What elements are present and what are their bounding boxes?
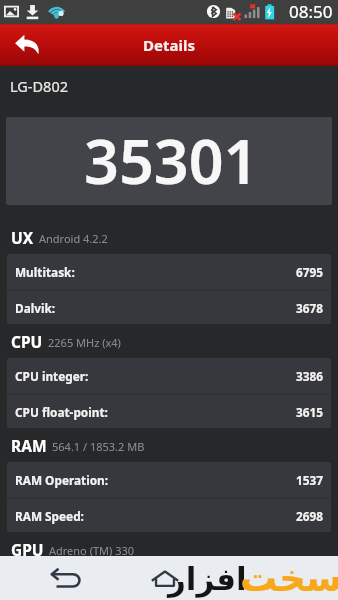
button[interactable]: Back <box>44 556 88 600</box>
staticText: Adreno (TM) 330 <box>49 543 135 558</box>
staticText: 08:50 <box>289 0 333 23</box>
staticText: Multitask: <box>15 264 75 280</box>
staticText: افزار <box>168 561 247 597</box>
staticText: 1274 <box>296 575 323 591</box>
staticText: 2D graphics: <box>15 575 87 591</box>
staticText: 3678 <box>296 300 323 316</box>
button[interactable]: RAM Speed: <box>7 499 331 532</box>
staticText: Dalvik: <box>15 300 56 316</box>
button[interactable]: 2D graphics: <box>7 566 331 600</box>
button[interactable]: CPU integer: <box>7 358 331 394</box>
staticText: 35301 <box>84 119 259 202</box>
staticText: RAM Operation: <box>15 472 109 488</box>
staticText: UX <box>11 227 34 248</box>
staticText: سخت <box>240 557 338 600</box>
staticText: 3615 <box>296 404 323 420</box>
button[interactable]: CPU float-point: <box>7 395 331 428</box>
staticText: CPU <box>11 331 43 352</box>
staticText: Android 4.2.2 <box>39 231 108 246</box>
staticText: 2265 MHz (x4) <box>48 335 121 350</box>
button[interactable]: RAM Operation: <box>7 462 331 498</box>
button[interactable]: Back <box>0 24 54 66</box>
button[interactable]: Multitask: <box>7 254 331 290</box>
staticText: CPU float-point: <box>15 404 108 420</box>
staticText: LG-D802 <box>10 76 68 96</box>
staticText: 6795 <box>296 264 323 280</box>
staticText: 3386 <box>296 368 323 384</box>
staticText: RAM <box>11 435 47 456</box>
staticText: RAM Speed: <box>15 508 84 524</box>
staticText: GPU <box>11 539 44 560</box>
staticText: Details <box>143 35 195 55</box>
button[interactable]: Dalvik: <box>7 291 331 324</box>
staticText: 2698 <box>296 508 323 524</box>
staticText: CPU integer: <box>15 368 89 384</box>
staticText: 564.1 / 1853.2 MB <box>52 439 145 454</box>
staticText: 1537 <box>296 472 323 488</box>
button[interactable]: Home <box>144 557 186 599</box>
